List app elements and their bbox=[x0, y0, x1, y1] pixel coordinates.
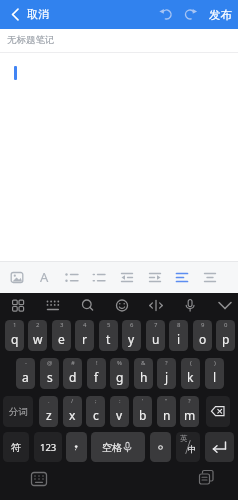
button[interactable]: 发布 bbox=[202, 0, 238, 29]
staticText: u bbox=[152, 331, 160, 347]
staticText: / bbox=[71, 397, 74, 405]
button[interactable]: . bbox=[39, 396, 58, 427]
staticText: . bbox=[48, 397, 50, 405]
button[interactable] bbox=[114, 264, 140, 291]
button[interactable] bbox=[174, 293, 208, 318]
staticText: 无标题笔记 bbox=[7, 34, 55, 46]
staticText: 符 bbox=[11, 441, 21, 454]
button[interactable]: ( bbox=[181, 358, 200, 389]
button[interactable]: ' bbox=[133, 396, 152, 427]
button[interactable]: 3 bbox=[52, 320, 71, 351]
button[interactable] bbox=[197, 264, 223, 291]
staticText: : bbox=[119, 397, 121, 405]
staticText: c bbox=[93, 407, 99, 423]
button[interactable]: ? bbox=[180, 396, 199, 427]
button[interactable]: ! bbox=[87, 358, 106, 389]
staticText: l bbox=[213, 369, 217, 385]
button[interactable]: ) bbox=[205, 358, 224, 389]
button[interactable] bbox=[24, 466, 54, 492]
button[interactable] bbox=[36, 293, 70, 318]
button[interactable]: 123 bbox=[34, 432, 62, 462]
button[interactable] bbox=[208, 293, 238, 318]
button[interactable] bbox=[155, 3, 177, 27]
staticText: ( bbox=[190, 359, 192, 367]
staticText: y bbox=[128, 331, 135, 347]
button[interactable] bbox=[180, 3, 202, 27]
button[interactable]: 4 bbox=[75, 320, 94, 351]
button[interactable] bbox=[70, 293, 104, 318]
button[interactable]: # bbox=[63, 358, 82, 389]
button[interactable]: @ bbox=[40, 358, 59, 389]
button[interactable]: 空格 bbox=[91, 432, 145, 462]
button[interactable]: - bbox=[16, 358, 35, 389]
staticText: x bbox=[69, 407, 76, 423]
staticText: 123 bbox=[40, 441, 57, 454]
staticText: j bbox=[165, 369, 169, 385]
button[interactable] bbox=[4, 264, 30, 291]
button[interactable] bbox=[59, 264, 85, 291]
button[interactable]: : bbox=[110, 396, 129, 427]
button[interactable] bbox=[139, 293, 173, 318]
staticText: s bbox=[47, 369, 53, 385]
staticText: 7 bbox=[154, 321, 158, 329]
button[interactable] bbox=[105, 293, 139, 318]
staticText: n bbox=[163, 407, 171, 423]
button[interactable]: 5 bbox=[99, 320, 118, 351]
button[interactable]: 7 bbox=[146, 320, 165, 351]
button[interactable]: 符 bbox=[3, 432, 29, 462]
staticText: v bbox=[116, 407, 123, 423]
button[interactable]: % bbox=[110, 358, 129, 389]
button[interactable]: / bbox=[63, 396, 82, 427]
staticText: 0 bbox=[224, 321, 228, 329]
staticText: 分词 bbox=[9, 406, 28, 418]
button[interactable]: 9 bbox=[193, 320, 212, 351]
staticText: A bbox=[40, 268, 49, 286]
staticText: 英 bbox=[180, 434, 188, 443]
staticText: 发布 bbox=[209, 8, 232, 22]
button[interactable] bbox=[206, 396, 230, 427]
button[interactable]: & bbox=[134, 358, 153, 389]
staticText: ' bbox=[142, 397, 144, 405]
staticText: 空格 bbox=[102, 441, 122, 454]
button[interactable] bbox=[170, 264, 196, 291]
staticText: & bbox=[141, 359, 146, 367]
staticText: g bbox=[116, 369, 124, 385]
staticText: 2 bbox=[36, 321, 40, 329]
button[interactable]: ? bbox=[157, 358, 176, 389]
staticText: q bbox=[11, 331, 19, 347]
staticText: ! bbox=[96, 359, 98, 367]
staticText: 1 bbox=[13, 321, 17, 329]
staticText: h bbox=[140, 369, 148, 385]
button[interactable] bbox=[205, 432, 234, 462]
staticText: @ bbox=[47, 359, 53, 367]
button[interactable]: " bbox=[157, 396, 176, 427]
button[interactable]: 分词 bbox=[3, 396, 33, 427]
button[interactable]: 8 bbox=[169, 320, 188, 351]
button[interactable] bbox=[1, 293, 35, 318]
button[interactable]: 2 bbox=[28, 320, 47, 351]
staticText: r bbox=[82, 331, 87, 347]
staticText: 4 bbox=[83, 321, 87, 329]
button[interactable]: 0 bbox=[216, 320, 235, 351]
button[interactable]: ; bbox=[86, 396, 105, 427]
button[interactable]: 1 bbox=[5, 320, 24, 351]
button[interactable] bbox=[192, 465, 222, 491]
staticText: f bbox=[94, 369, 99, 385]
button[interactable] bbox=[87, 264, 113, 291]
button[interactable] bbox=[66, 432, 87, 462]
button[interactable] bbox=[150, 432, 171, 462]
button[interactable] bbox=[32, 264, 58, 291]
staticText: z bbox=[46, 407, 52, 423]
button[interactable] bbox=[142, 264, 168, 291]
staticText: ; bbox=[95, 397, 97, 405]
button[interactable] bbox=[0, 0, 52, 29]
staticText: ? bbox=[188, 397, 191, 405]
staticText: k bbox=[187, 369, 194, 385]
staticText: 6 bbox=[130, 321, 134, 329]
staticText: 8 bbox=[177, 321, 181, 329]
button[interactable]: 英 bbox=[176, 432, 200, 462]
staticText: m bbox=[184, 407, 196, 423]
staticText: 取消 bbox=[27, 7, 49, 21]
staticText: t bbox=[106, 331, 111, 347]
button[interactable]: 6 bbox=[122, 320, 141, 351]
